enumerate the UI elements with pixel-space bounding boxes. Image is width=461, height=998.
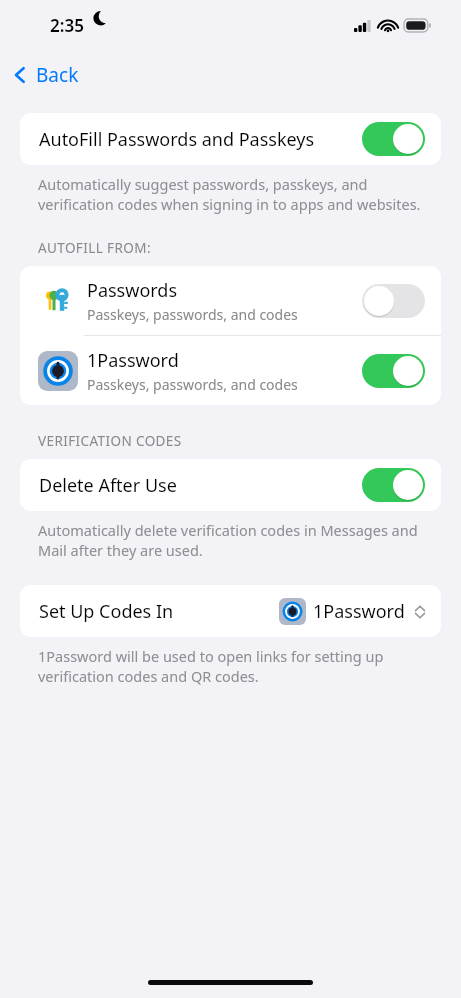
button[interactable]: 1Password — [20, 336, 441, 405]
staticText: Passkeys, passwords, and codes — [87, 305, 298, 324]
staticText: AUTOFILL FROM: — [38, 239, 151, 257]
button[interactable]: Toggle off — [362, 284, 425, 318]
button[interactable]: Passwords — [20, 266, 441, 335]
button[interactable]: Back — [10, 50, 79, 100]
staticText: 2:35 — [50, 14, 84, 37]
button[interactable]: Toggle on — [362, 122, 425, 156]
staticText: AutoFill Passwords and Passkeys — [39, 127, 315, 152]
button[interactable]: Toggle on — [362, 354, 425, 388]
staticText: Set Up Codes In — [39, 599, 174, 624]
staticText: Passwords — [87, 278, 178, 303]
staticText: Delete After Use — [39, 473, 177, 498]
staticText: Automatically delete verification codes … — [38, 520, 421, 560]
button[interactable]: Set Up Codes In — [20, 585, 441, 637]
staticText: 1Password will be used to open links for… — [38, 646, 421, 686]
staticText: 1Password — [87, 348, 179, 373]
staticText: Automatically suggest passwords, passkey… — [38, 174, 421, 214]
button[interactable]: AutoFill Passwords and Passkeys — [20, 113, 441, 165]
staticText: Passkeys, passwords, and codes — [87, 375, 298, 394]
button[interactable]: Delete After Use — [20, 459, 441, 511]
button[interactable]: Toggle on — [362, 468, 425, 502]
staticText: 1Password — [313, 599, 405, 624]
staticText: Back — [36, 62, 79, 88]
staticText: VERIFICATION CODES — [38, 432, 182, 450]
